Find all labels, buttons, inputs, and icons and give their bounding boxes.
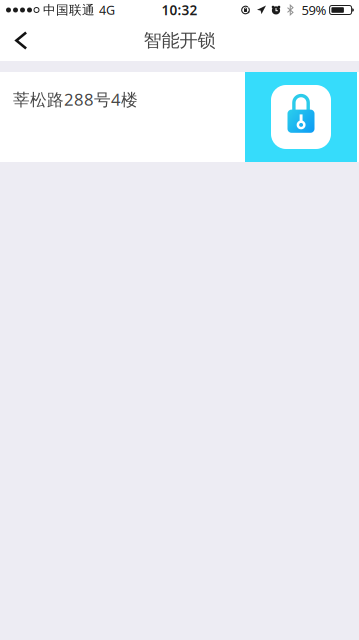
staticText: 4G — [99, 1, 115, 19]
button[interactable]: Back — [0, 20, 45, 61]
staticText: 10:32 — [161, 1, 197, 19]
staticText: 智能开锁 — [143, 29, 215, 52]
staticText: 莘松路288号4楼 — [13, 88, 138, 111]
staticText: 59% — [302, 1, 327, 19]
button[interactable]: 莘松路288号4楼 — [0, 72, 359, 162]
staticText: 中国联通 — [43, 2, 95, 18]
